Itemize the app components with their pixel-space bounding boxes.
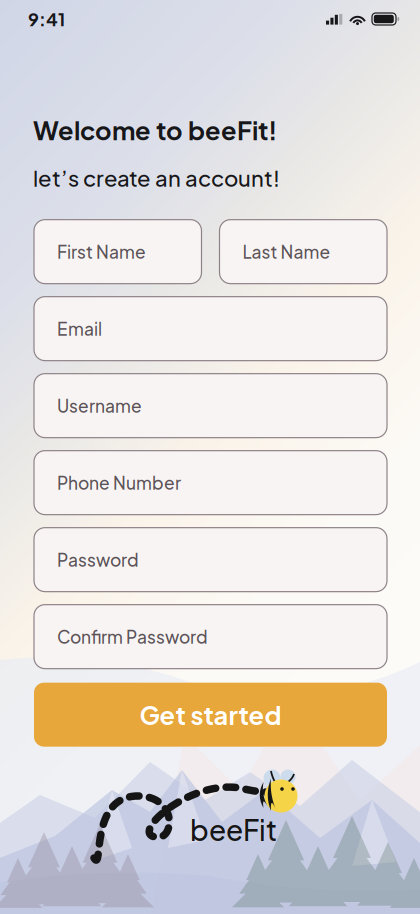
staticText: let’s create an account! [33,164,280,192]
button[interactable]: Password [34,528,387,592]
staticText: 9:41 [28,8,65,30]
button[interactable]: Get started [34,683,387,747]
staticText: Password [57,549,139,570]
button[interactable]: Phone Number [34,451,387,515]
staticText: Email [57,318,102,339]
staticText: First Name [57,241,146,262]
button[interactable]: Email [34,297,387,361]
staticText: Get started [139,699,281,731]
button[interactable]: Last Name [219,220,387,284]
staticText: beeFit [190,812,277,847]
staticText: Confirm Password [57,626,208,647]
staticText: Last Name [242,241,330,262]
staticText: Phone Number [57,472,181,493]
staticText: Welcome to beeFit! [33,114,277,146]
staticText: Username [57,395,142,416]
button[interactable]: Username [34,374,387,438]
button[interactable]: Confirm Password [34,605,387,669]
button[interactable]: First Name [34,220,201,284]
